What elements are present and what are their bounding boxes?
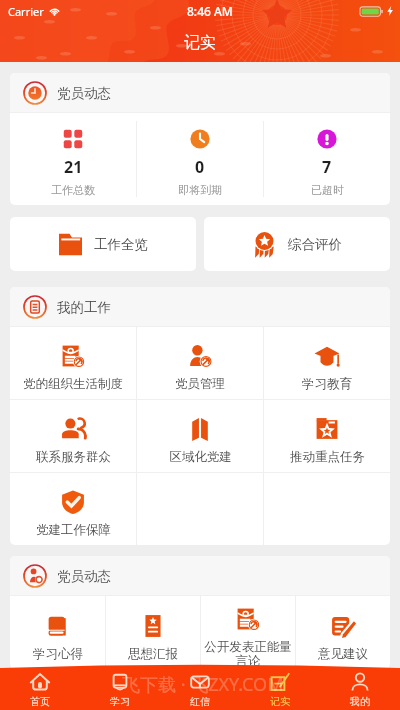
staticText: 学习 [110,695,130,708]
staticText: 21 [64,156,83,178]
staticText: 学习心得 [33,646,83,662]
staticText: 意见建议 [318,646,368,662]
button[interactable]: 党建工作保障 [10,473,136,545]
button[interactable]: 红信 [160,663,240,710]
staticText: 记实 [270,695,290,708]
button[interactable]: 意见建议 [296,596,390,669]
button[interactable]: 区域化党建 [137,400,263,472]
staticText: 即将到期 [178,183,222,197]
staticText: 记实 [184,33,216,53]
staticText: 我的工作 [57,299,111,316]
button[interactable]: 联系服务群众 [10,400,136,472]
button[interactable]: 记实 [240,663,320,710]
button[interactable]: 学习 [80,663,160,710]
staticText: 党员动态 [57,85,111,102]
button[interactable]: 党员管理 [137,327,263,399]
staticText: 飞下载 · 飞ZXY.COM [122,672,284,697]
button[interactable]: 学习教育 [264,327,390,399]
button[interactable]: 党的组织生活制度 [10,327,136,399]
staticText: 学习教育 [302,376,352,392]
button[interactable]: 推动重点任务 [264,400,390,472]
staticText: 综合评价 [288,236,342,253]
button[interactable]: 首页 [0,663,80,710]
button[interactable]: 工作全览 [10,217,196,271]
button[interactable]: 思想汇报 [106,596,200,669]
staticText: 联系服务群众 [36,449,111,465]
button[interactable]: 0 [137,113,263,205]
staticText: 已超时 [311,183,344,197]
staticText: 工作全览 [94,236,148,253]
staticText: 工作总数 [51,183,95,197]
staticText: 8:46 AM [187,3,233,19]
staticText: Carrier [8,4,44,19]
staticText: 推动重点任务 [290,449,365,465]
staticText: 我的 [350,695,370,708]
staticText: 7 [322,156,332,178]
staticText: 红信 [190,695,210,708]
staticText: 党的组织生活制度 [23,376,123,392]
staticText: 党建工作保障 [36,522,111,538]
button[interactable]: 学习心得 [10,596,105,669]
staticText: 区域化党建 [169,449,232,465]
staticText: 0 [195,156,205,178]
staticText: 党员管理 [175,376,225,392]
button[interactable]: 公开发表正能量言论 [201,596,295,669]
button[interactable]: 我的 [320,663,400,710]
staticText: 党员动态 [57,568,111,585]
staticText: 首页 [30,695,50,708]
staticText: 公开发表正能量言论 [204,639,292,669]
button[interactable]: 21 [10,113,136,205]
button[interactable]: 7 [264,113,390,205]
button[interactable]: 综合评价 [204,217,390,271]
staticText: 思想汇报 [128,646,178,662]
